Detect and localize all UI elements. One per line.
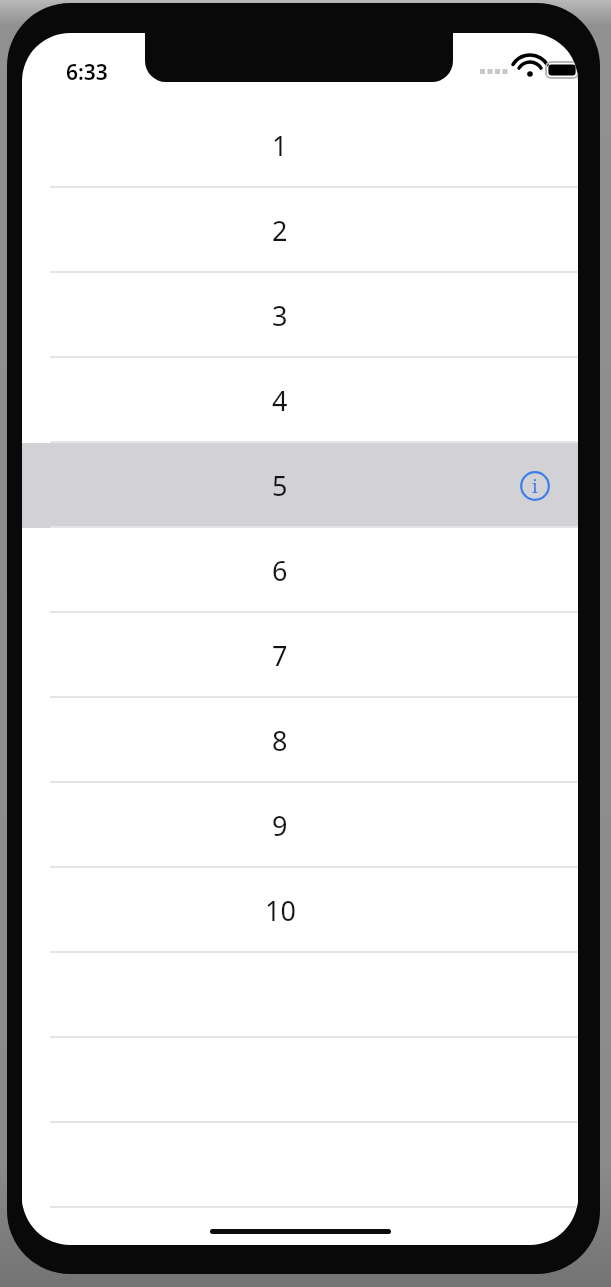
staticText: 6:33	[66, 58, 108, 87]
button[interactable]: 10	[22, 868, 578, 953]
button[interactable]: 9	[22, 783, 578, 868]
button[interactable]: 5	[22, 443, 578, 528]
staticText: i	[532, 474, 538, 499]
button[interactable]: 7	[22, 613, 578, 698]
staticText: 4	[272, 382, 288, 419]
staticText: 1	[272, 127, 288, 164]
staticText: 10	[265, 892, 296, 929]
button[interactable]: 6	[22, 528, 578, 613]
button[interactable]: More info	[518, 469, 552, 503]
staticText: 3	[272, 297, 288, 334]
staticText: 5	[272, 467, 288, 504]
button[interactable]: 4	[22, 358, 578, 443]
button[interactable]: 8	[22, 698, 578, 783]
staticText: 7	[272, 637, 288, 674]
button[interactable]	[22, 953, 578, 1038]
button[interactable]: 1	[22, 103, 578, 188]
button[interactable]	[22, 1123, 578, 1208]
button[interactable]: 2	[22, 188, 578, 273]
button[interactable]: 3	[22, 273, 578, 358]
staticText: 9	[272, 807, 288, 844]
staticText: 2	[272, 212, 288, 249]
button[interactable]	[22, 1038, 578, 1123]
staticText: 6	[272, 552, 288, 589]
staticText: 8	[272, 722, 288, 759]
